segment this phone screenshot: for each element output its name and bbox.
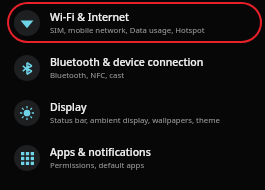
staticText: Apps & notifications (50, 145, 151, 159)
staticText: Permissions, default apps (50, 160, 145, 171)
staticText: SIM, mobile network, Data usage, Hotspot (50, 25, 205, 36)
staticText: Status bar, ambient display, wallpapers,… (50, 115, 220, 126)
button[interactable]: Bluetooth (0, 45, 265, 90)
staticText: Display (50, 100, 87, 114)
staticText: Bluetooth & device connection (50, 55, 204, 69)
button[interactable]: Apps and notifications (0, 135, 265, 180)
staticText: Wi-Fi & Internet (50, 10, 130, 24)
button[interactable]: Wi-Fi (0, 0, 265, 45)
other: Bluetooth (21, 62, 34, 75)
other: Apps and notifications (21, 152, 34, 165)
other: Display (20, 106, 34, 120)
button[interactable]: Display (0, 90, 265, 135)
staticText: Bluetooth, NFC, cast (50, 70, 124, 81)
other: Wi-Fi (20, 16, 34, 30)
